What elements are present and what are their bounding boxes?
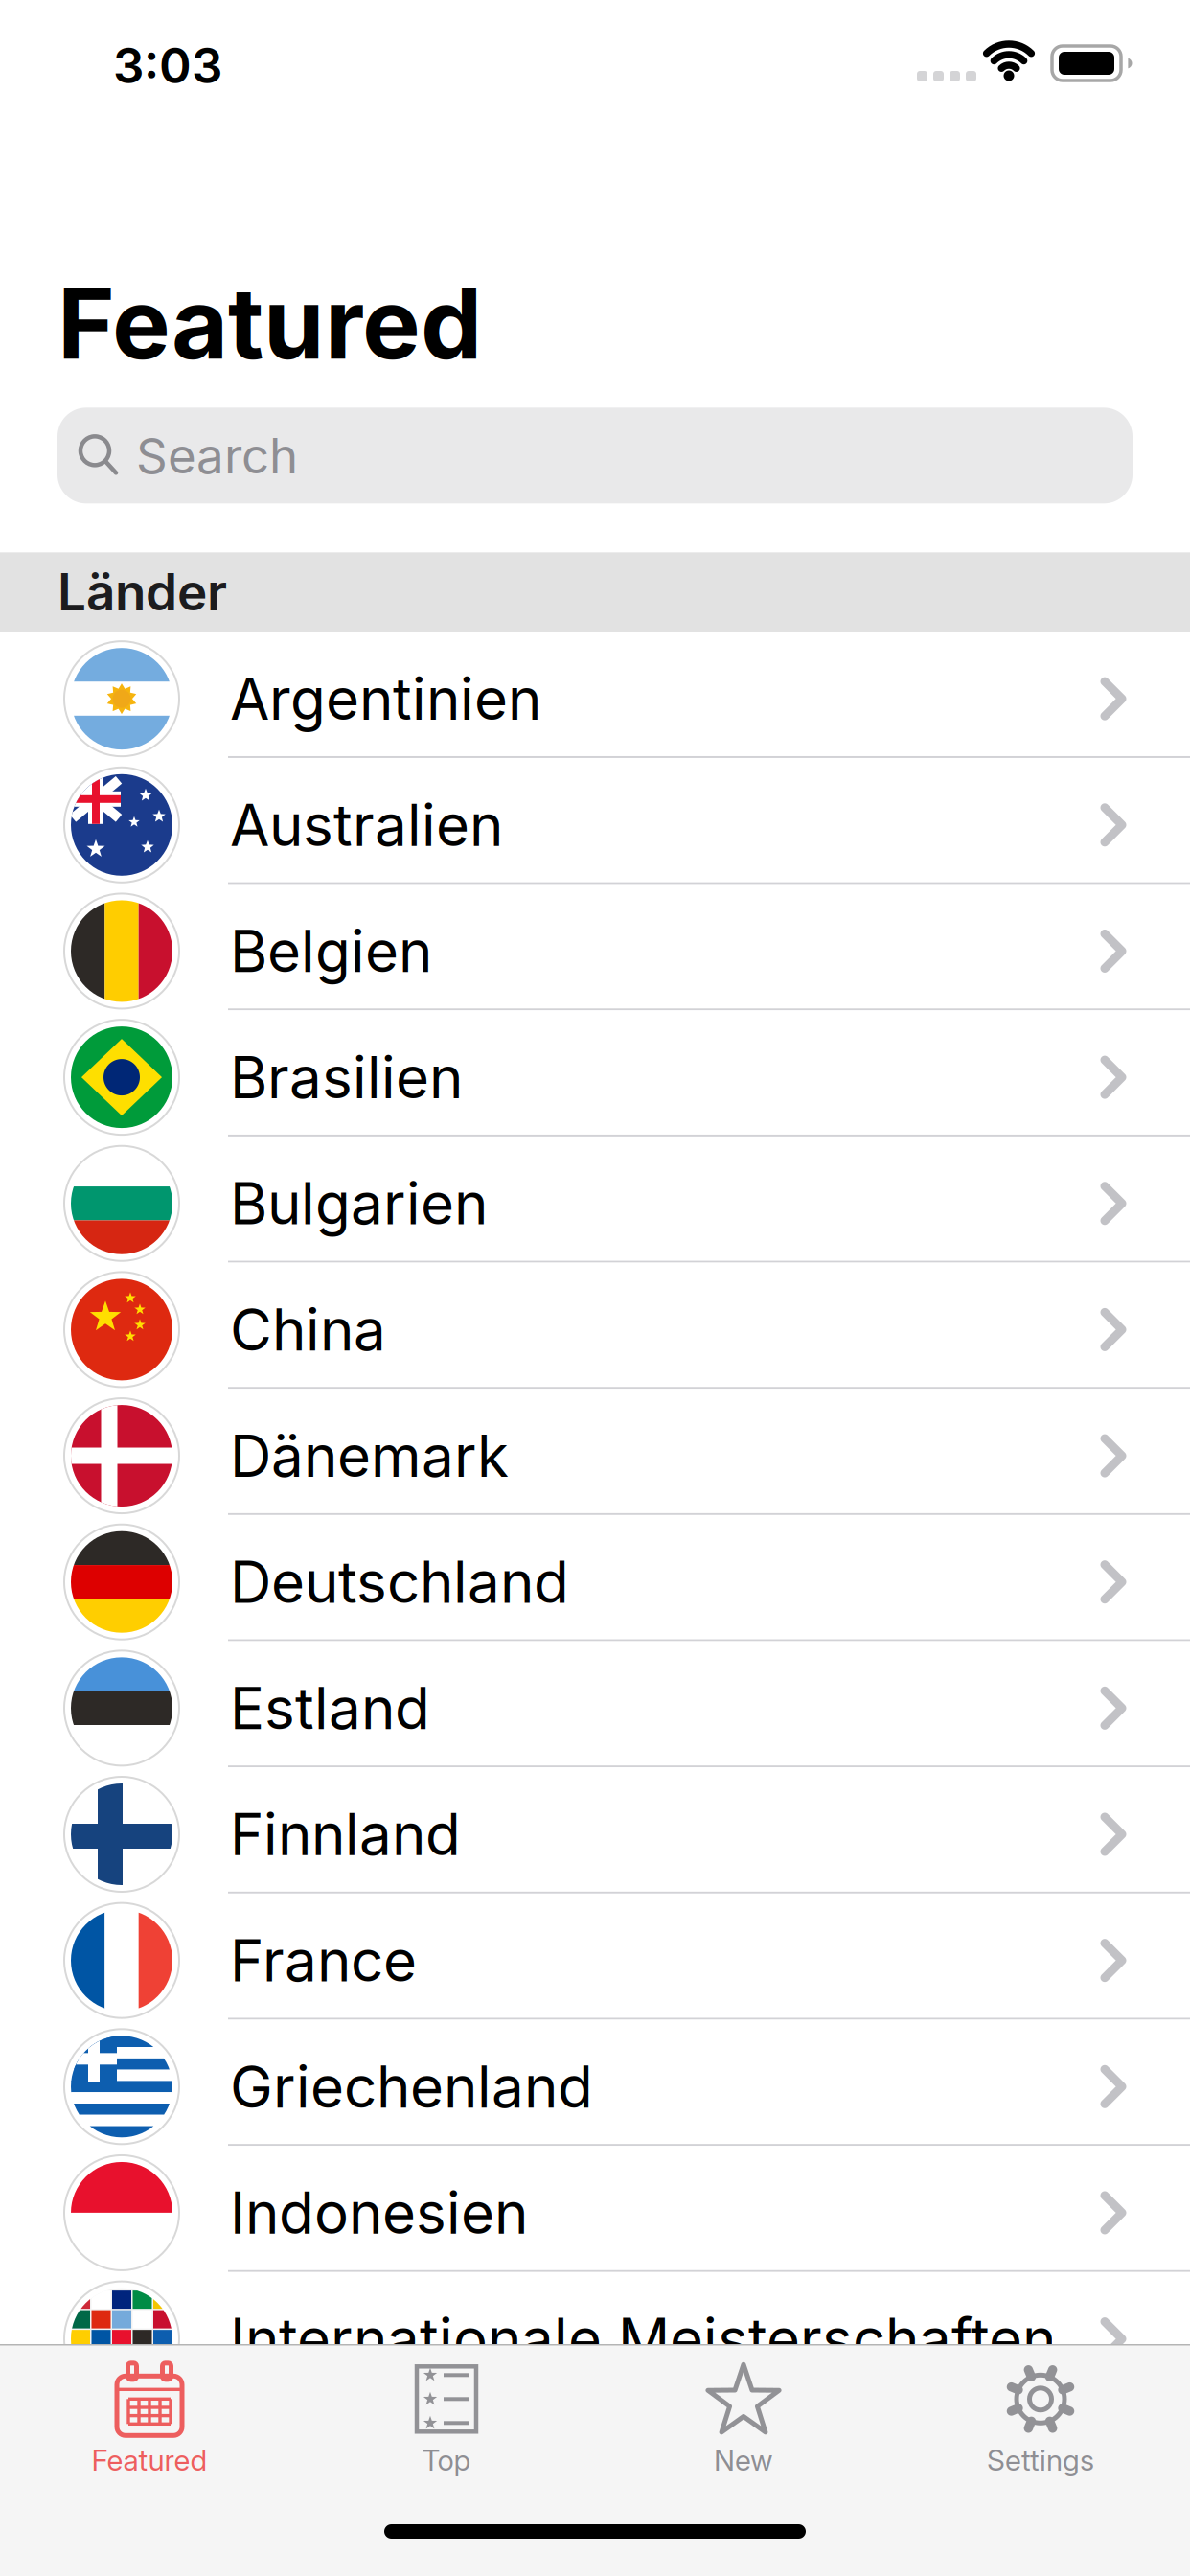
staticText: Search — [136, 427, 298, 484]
staticText: France — [230, 1927, 417, 1994]
staticText: New — [714, 2443, 773, 2477]
button[interactable]: Brasilien — [0, 1010, 1190, 1137]
staticText: Griechenland — [230, 2053, 593, 2121]
staticText: Indonesien — [230, 2179, 528, 2247]
button[interactable]: Dänemark — [0, 1389, 1190, 1515]
button[interactable]: Settings — [892, 2354, 1189, 2484]
staticText: Estland — [230, 1674, 430, 1742]
staticText: Dänemark — [230, 1422, 509, 1490]
staticText: Belgien — [230, 917, 432, 985]
button[interactable]: Indonesien — [0, 2146, 1190, 2272]
button[interactable]: Finnland — [0, 1767, 1190, 1894]
staticText: China — [230, 1296, 386, 1364]
button[interactable]: Griechenland — [0, 2020, 1190, 2146]
button[interactable]: Top — [298, 2354, 595, 2484]
button[interactable]: Argentinien — [0, 632, 1190, 758]
staticText: Internationale Meisterschaften — [230, 2305, 1056, 2373]
staticText: Deutschland — [230, 1548, 569, 1616]
button[interactable]: Australien — [0, 758, 1190, 884]
button[interactable]: New — [595, 2354, 892, 2484]
staticText: Australien — [230, 791, 503, 859]
staticText: 3:03 — [113, 36, 222, 94]
button[interactable]: Bulgarien — [0, 1136, 1190, 1263]
button[interactable]: China — [0, 1263, 1190, 1389]
staticText: Argentinien — [230, 665, 541, 733]
staticText: Länder — [57, 562, 227, 622]
button[interactable]: Deutschland — [0, 1515, 1190, 1641]
staticText: Brasilien — [230, 1043, 463, 1111]
button[interactable]: Belgien — [0, 884, 1190, 1010]
button[interactable]: Internationale Meisterschaften — [0, 2272, 1190, 2398]
button[interactable]: Featured — [1, 2354, 298, 2484]
staticText: Finnland — [230, 1800, 461, 1868]
staticText: Featured — [57, 265, 482, 381]
button[interactable]: Estland — [0, 1641, 1190, 1767]
button[interactable]: Search — [0, 408, 1190, 503]
staticText: Bulgarien — [230, 1170, 488, 1237]
button[interactable]: France — [0, 1893, 1190, 2020]
staticText: Settings — [987, 2443, 1094, 2477]
staticText: Featured — [92, 2443, 207, 2477]
staticText: Top — [422, 2443, 471, 2477]
